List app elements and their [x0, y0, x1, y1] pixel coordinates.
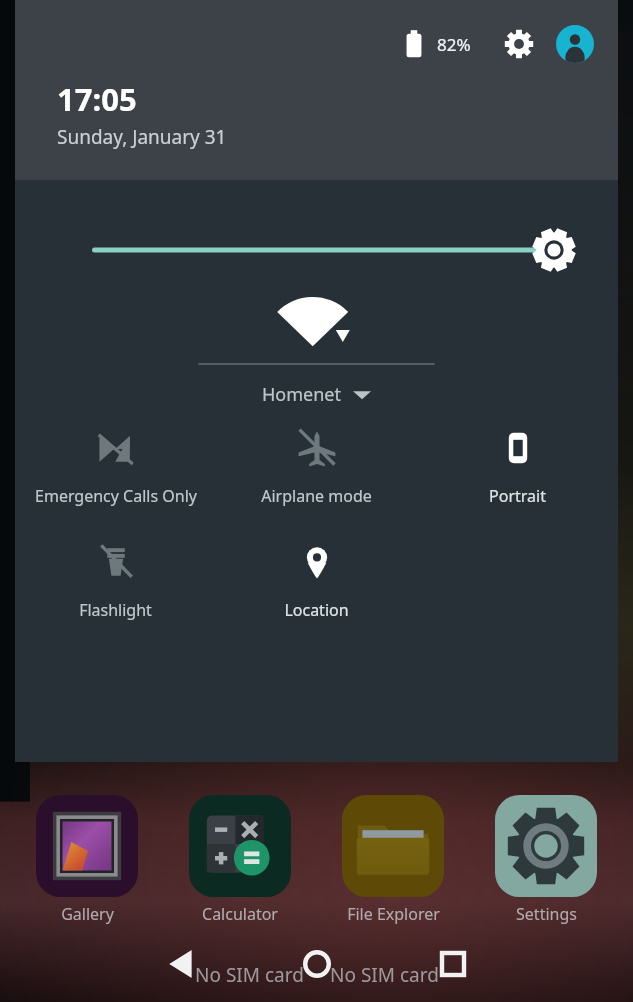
- button[interactable]: Back: [149, 934, 213, 994]
- button[interactable]: Wi-Fi: [15, 282, 618, 360]
- staticText: Airplane mode: [261, 485, 372, 507]
- button[interactable]: Emergency Calls Only: [15, 421, 216, 511]
- staticText: Flashlight: [79, 599, 152, 621]
- button[interactable]: Portrait: [417, 421, 618, 511]
- button[interactable]: File Explorer: [332, 795, 454, 925]
- button[interactable]: Recent apps: [421, 934, 485, 994]
- staticText: Calculator: [202, 903, 278, 925]
- staticText: 82%: [437, 33, 471, 56]
- button[interactable]: Homenet: [262, 382, 371, 407]
- button[interactable]: Gallery: [26, 795, 148, 925]
- button[interactable]: Flashlight: [15, 535, 216, 625]
- staticText: Emergency Calls Only: [35, 485, 197, 507]
- staticText: Gallery: [61, 903, 114, 925]
- staticText: 17:05: [57, 78, 137, 120]
- button[interactable]: Home: [285, 934, 349, 994]
- button[interactable]: Settings: [485, 795, 607, 925]
- staticText: No SIM card: [195, 962, 304, 988]
- staticText: Settings: [516, 903, 577, 925]
- staticText: Location: [284, 599, 349, 621]
- button[interactable]: Settings: [497, 22, 541, 66]
- staticText: Sunday, January 31: [57, 124, 227, 150]
- button[interactable]: Location: [216, 535, 417, 625]
- button[interactable]: User profile: [553, 22, 597, 66]
- staticText: Portrait: [489, 485, 546, 507]
- staticText: No SIM card: [330, 962, 439, 988]
- button[interactable]: Calculator: [179, 795, 301, 925]
- button[interactable]: Brightness: [15, 180, 618, 282]
- staticText: File Explorer: [347, 903, 440, 925]
- button[interactable]: Airplane mode: [216, 421, 417, 511]
- staticText: Homenet: [262, 382, 341, 407]
